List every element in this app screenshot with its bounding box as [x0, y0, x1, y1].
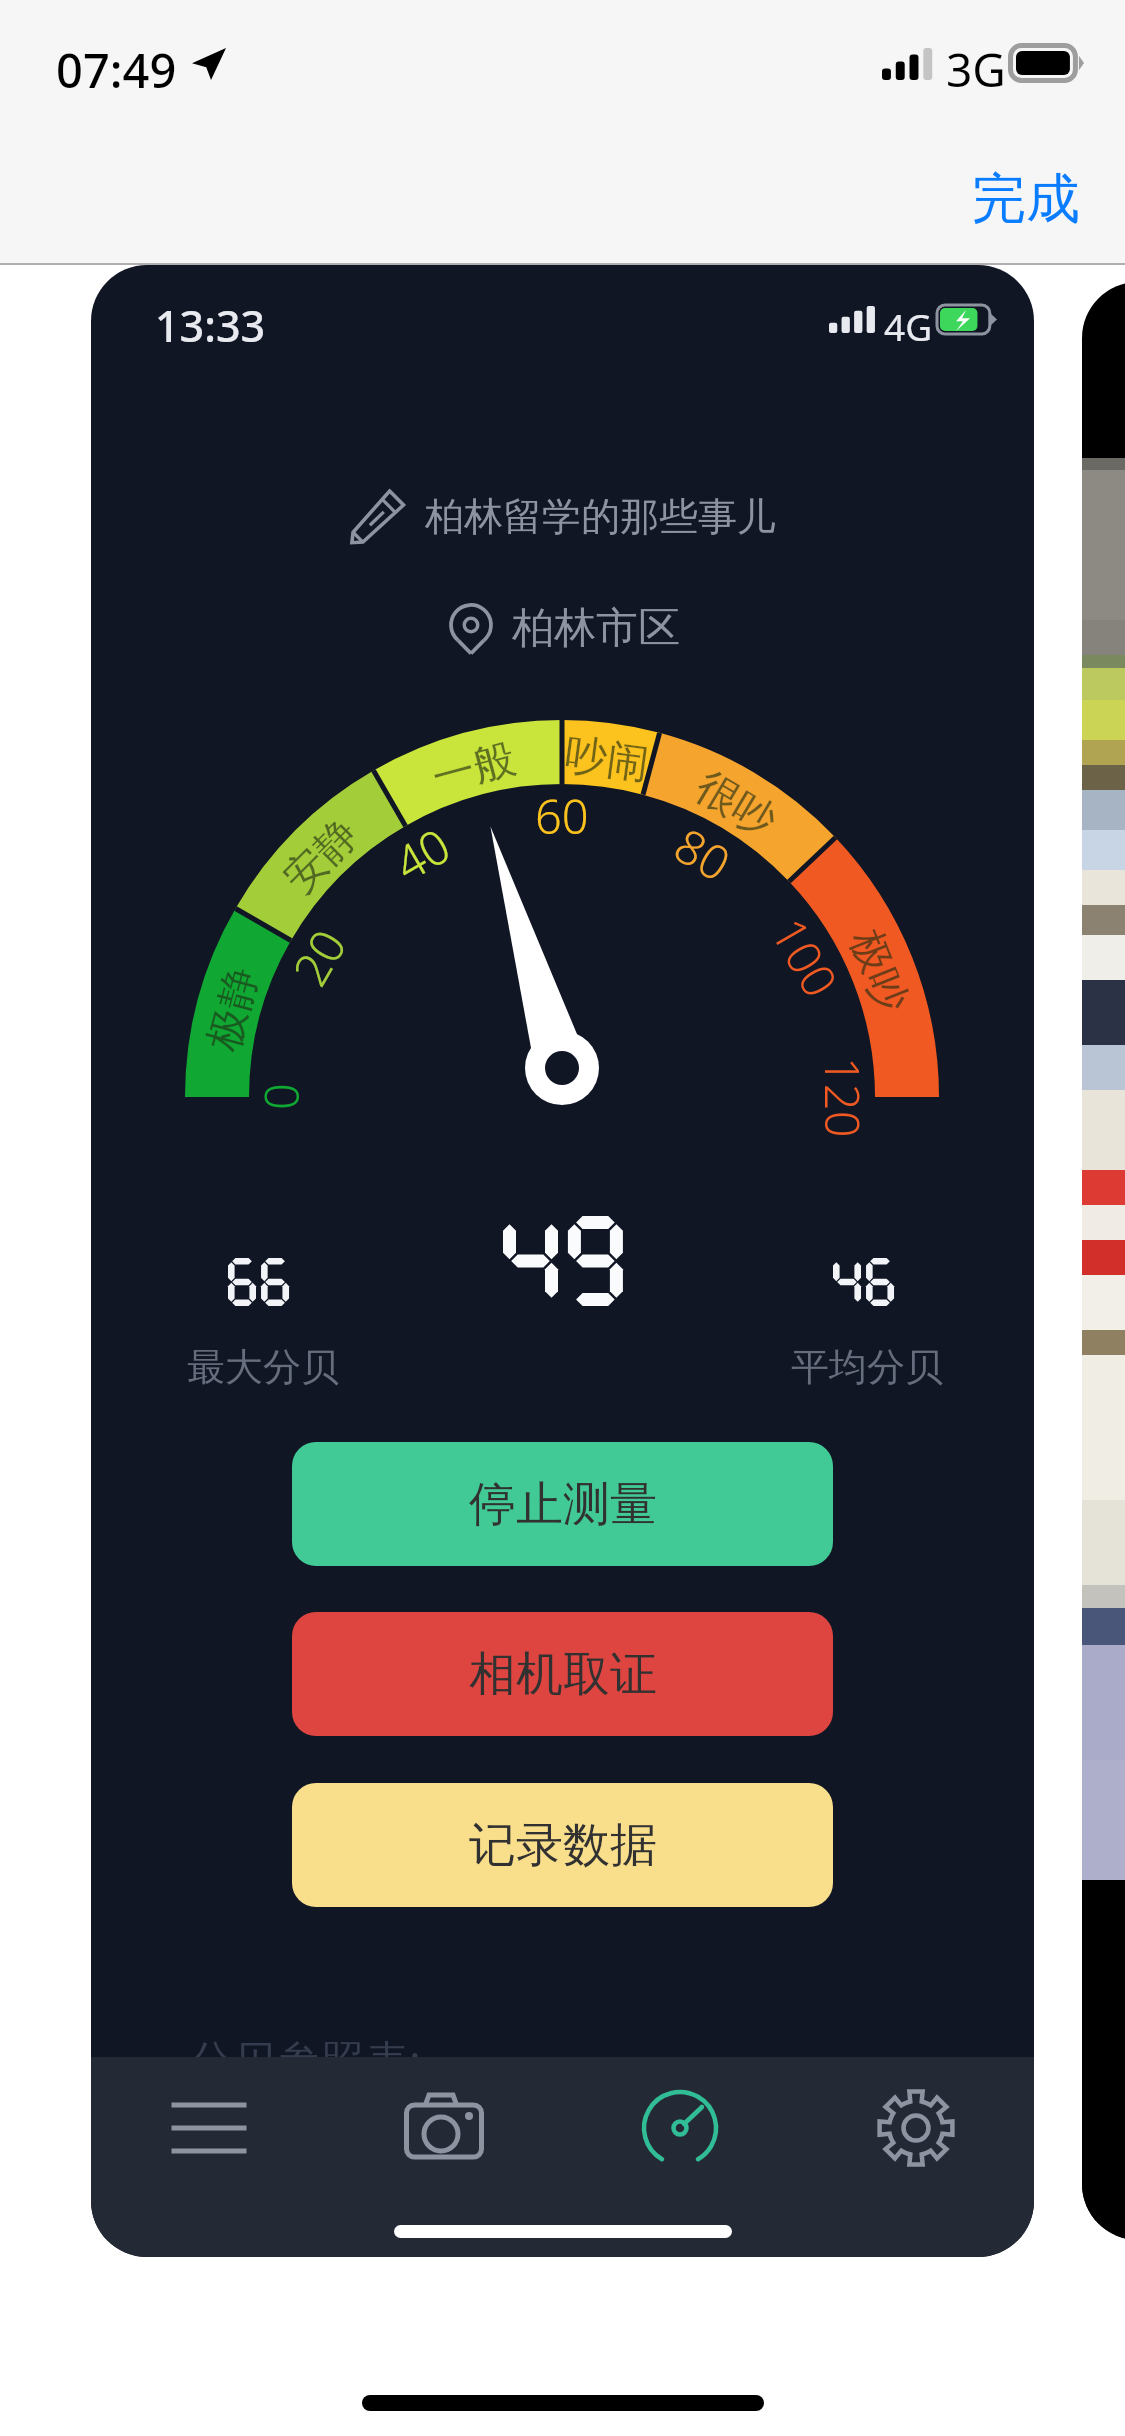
button[interactable]: Camera — [326, 2057, 562, 2199]
staticText: 80 — [664, 813, 742, 895]
staticText: 平均分贝 — [791, 1343, 943, 1391]
button[interactable]: 柏林留学的那些事儿 — [91, 487, 1034, 545]
staticText: 120 — [811, 1057, 875, 1138]
staticText: 3G — [946, 38, 1006, 101]
button[interactable]: 相机取证 — [292, 1612, 833, 1736]
staticText: 20 — [278, 918, 360, 996]
button[interactable]: 停止测量 — [292, 1442, 833, 1566]
staticText: 最大分贝 — [187, 1343, 339, 1391]
staticText: 停止测量 — [469, 1475, 657, 1534]
staticText: 分贝参照表: — [189, 2030, 421, 2090]
staticText: 07:49 — [56, 38, 177, 102]
staticText: 完成 — [972, 165, 1080, 233]
staticText: 相机取证 — [469, 1645, 657, 1704]
button[interactable]: 记录数据 — [292, 1783, 833, 1907]
button[interactable]: Sound meter — [562, 2057, 798, 2199]
staticText: 柏林留学的那些事儿 — [425, 492, 776, 541]
staticText: 0 — [249, 1083, 313, 1110]
button[interactable]: 完成 — [956, 155, 1096, 243]
button[interactable]: 柏林市区 — [91, 602, 1034, 655]
staticText: 安静 — [273, 808, 370, 905]
staticText: 一般 — [427, 732, 522, 805]
staticText: 很吵 — [686, 760, 785, 849]
staticText: 极静 — [197, 962, 270, 1057]
staticText: 吵闹 — [562, 728, 652, 791]
staticText: 极吵 — [838, 922, 919, 1020]
staticText: 记录数据 — [469, 1816, 657, 1875]
button[interactable]: 13:33 — [91, 265, 1034, 2257]
staticText: 40 — [383, 813, 461, 895]
staticText: 13:33 — [155, 296, 266, 355]
button[interactable]: Menu — [91, 2057, 326, 2199]
staticText: 柏林市区 — [512, 602, 680, 655]
button[interactable]: Settings — [798, 2057, 1034, 2199]
staticText: 100 — [757, 906, 853, 1008]
staticText: 60 — [535, 784, 589, 848]
staticText: 4G — [884, 301, 933, 351]
